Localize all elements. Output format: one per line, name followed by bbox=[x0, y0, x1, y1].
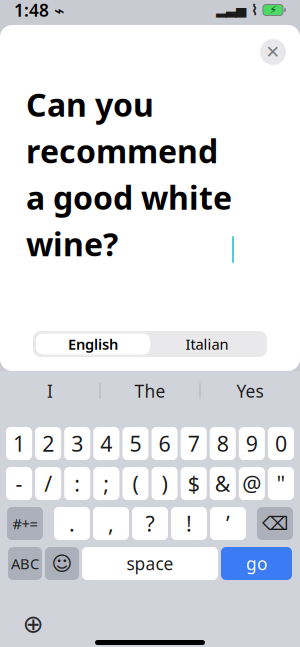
staticText: Can you recommend a good white wine? bbox=[26, 83, 232, 265]
staticText: ! bbox=[186, 509, 192, 538]
button[interactable]: 2 bbox=[35, 427, 61, 460]
button[interactable]: space bbox=[82, 547, 218, 580]
staticText: ) bbox=[162, 469, 168, 498]
staticText: English bbox=[68, 334, 118, 354]
staticText: / bbox=[44, 469, 52, 498]
staticText: ? bbox=[145, 509, 154, 538]
button[interactable]: 6 bbox=[151, 427, 178, 460]
staticText: 9 bbox=[246, 429, 258, 458]
staticText: ⚡︎ bbox=[269, 4, 276, 16]
staticText: space bbox=[126, 552, 173, 575]
button[interactable]: , bbox=[93, 507, 129, 540]
staticText: ABC bbox=[11, 554, 39, 573]
staticText: 4 bbox=[100, 429, 112, 458]
button[interactable]: ’ bbox=[210, 507, 246, 540]
staticText: 5 bbox=[129, 429, 141, 458]
staticText: : bbox=[74, 469, 80, 498]
button[interactable]: $ bbox=[181, 467, 207, 500]
staticText: 2 bbox=[42, 429, 54, 458]
staticText: I bbox=[47, 379, 53, 402]
button[interactable]: ? bbox=[132, 507, 168, 540]
staticText: 0 bbox=[275, 429, 287, 458]
staticText: . bbox=[69, 509, 75, 538]
button[interactable]: The bbox=[100, 371, 199, 411]
button[interactable]: @ bbox=[239, 467, 265, 500]
button[interactable]: 5 bbox=[122, 427, 148, 460]
button[interactable]: 1 bbox=[6, 427, 32, 460]
staticText: #+= bbox=[12, 514, 37, 533]
staticText: go bbox=[246, 552, 267, 575]
button[interactable]: " bbox=[268, 467, 294, 500]
button[interactable]: 8 bbox=[210, 427, 236, 460]
staticText: 3 bbox=[71, 429, 83, 458]
button[interactable]: ☺ bbox=[45, 547, 79, 580]
staticText: ⌇ bbox=[246, 2, 263, 18]
staticText: ; bbox=[103, 469, 109, 498]
staticText: & bbox=[215, 469, 231, 498]
button[interactable]: ! bbox=[171, 507, 207, 540]
button[interactable]: / bbox=[35, 467, 61, 500]
button[interactable]: Switch keyboard bbox=[18, 609, 48, 639]
button[interactable]: Yes bbox=[200, 371, 299, 411]
button[interactable]: English bbox=[36, 333, 150, 354]
staticText: Italian bbox=[185, 334, 228, 354]
staticText: , bbox=[108, 509, 114, 538]
staticText: $ bbox=[188, 469, 200, 498]
staticText: ✕ bbox=[265, 42, 280, 62]
staticText: 6 bbox=[159, 429, 171, 458]
button[interactable]: : bbox=[64, 467, 90, 500]
button[interactable]: #+= bbox=[7, 507, 43, 540]
button[interactable]: ; bbox=[93, 467, 119, 500]
staticText: 1 bbox=[13, 429, 25, 458]
button[interactable]: 7 bbox=[181, 427, 207, 460]
button[interactable]: 4 bbox=[93, 427, 119, 460]
staticText: 1:48 ⌁ bbox=[14, 0, 64, 21]
button[interactable]: ⌫ bbox=[257, 507, 293, 540]
staticText: Yes bbox=[236, 379, 263, 402]
staticText: - bbox=[16, 469, 23, 498]
staticText: ☺ bbox=[51, 552, 72, 575]
staticText: ’ bbox=[226, 509, 230, 538]
button[interactable]: ( bbox=[122, 467, 148, 500]
staticText: The bbox=[134, 379, 165, 402]
button[interactable]: Italian bbox=[150, 333, 264, 354]
button[interactable]: & bbox=[210, 467, 236, 500]
button[interactable]: ) bbox=[151, 467, 178, 500]
button[interactable]: 3 bbox=[64, 427, 90, 460]
staticText: @ bbox=[242, 469, 261, 498]
button[interactable]: ABC bbox=[8, 547, 42, 580]
staticText: ⊕ bbox=[22, 610, 43, 638]
button[interactable]: - bbox=[6, 467, 32, 500]
button[interactable]: 9 bbox=[239, 427, 265, 460]
staticText: ▂▃▅ bbox=[216, 2, 246, 17]
button[interactable]: I bbox=[0, 371, 99, 411]
staticText: " bbox=[276, 469, 285, 498]
staticText: ( bbox=[132, 469, 138, 498]
button[interactable]: . bbox=[54, 507, 90, 540]
staticText: 8 bbox=[217, 429, 229, 458]
button[interactable]: go bbox=[221, 547, 292, 580]
staticText: ⌫ bbox=[262, 513, 288, 534]
staticText: 7 bbox=[188, 429, 200, 458]
button[interactable]: Close bbox=[260, 39, 286, 65]
button[interactable]: 0 bbox=[268, 427, 294, 460]
